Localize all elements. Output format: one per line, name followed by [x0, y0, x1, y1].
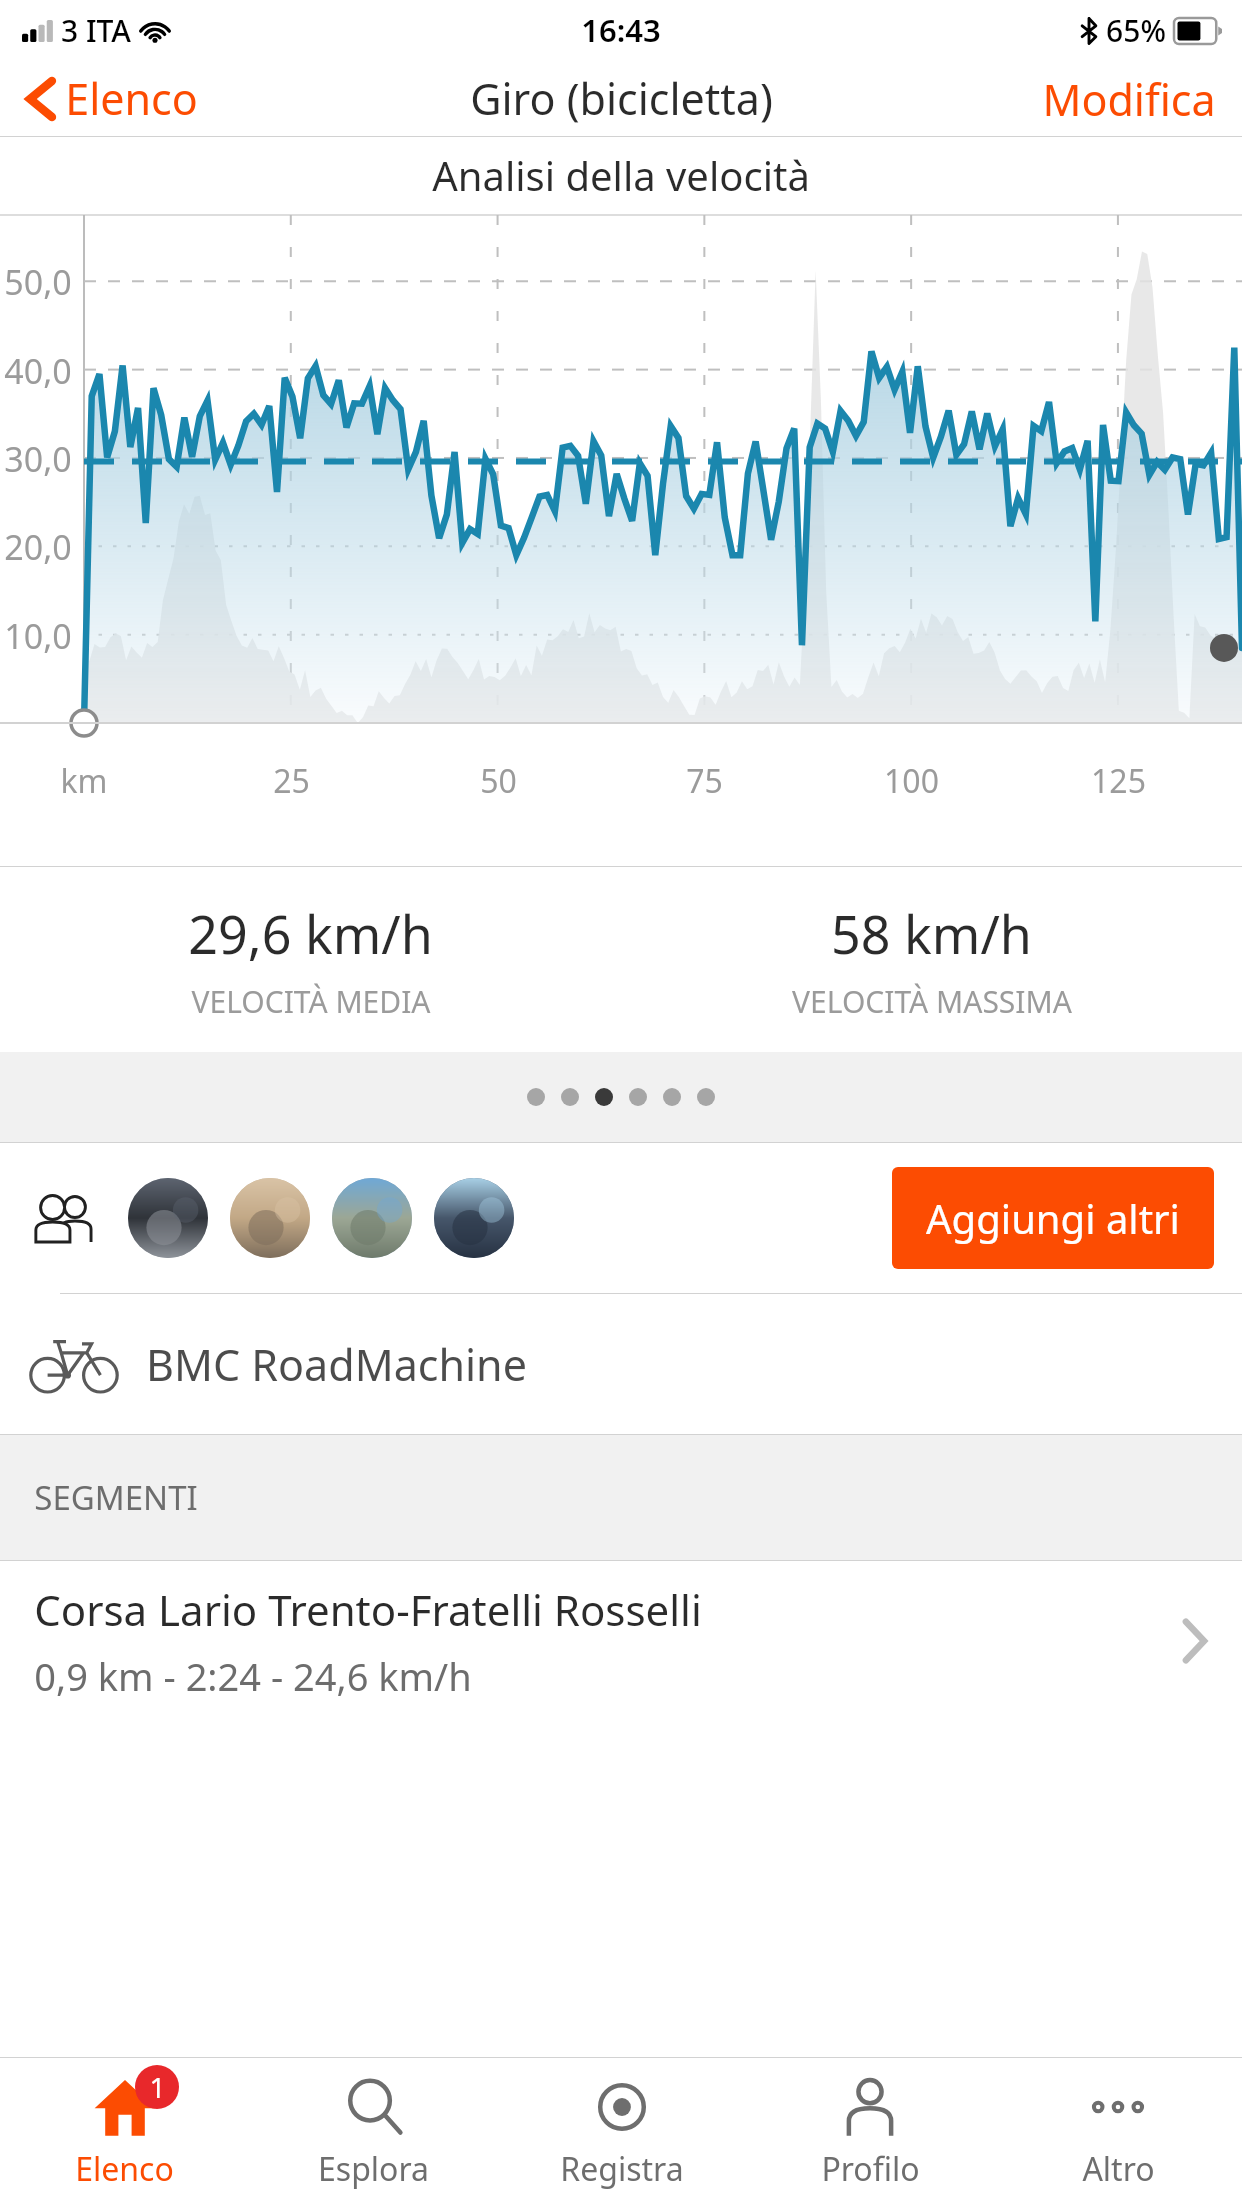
staticText: 58 km/h: [831, 898, 1032, 969]
button[interactable]: Atleta: [332, 1178, 412, 1258]
staticText: Aggiungi altri: [926, 1191, 1180, 1245]
staticText: Elenco: [65, 69, 198, 128]
staticText: Altro: [1082, 2147, 1155, 2191]
staticText: 0,9 km - 2:24 - 24,6 km/h: [34, 1650, 472, 1702]
staticText: VELOCITÀ MASSIMA: [792, 981, 1072, 1022]
staticText: Registra: [560, 2147, 684, 2191]
staticText: Analisi della velocità: [432, 148, 810, 202]
staticText: 1: [149, 2068, 166, 2106]
button[interactable]: 58 km/h: [621, 867, 1242, 1052]
button[interactable]: Esplora: [249, 2058, 498, 2208]
staticText: Modifica: [1042, 70, 1216, 126]
staticText: Esplora: [318, 2147, 429, 2191]
button[interactable]: Corsa Lario Trento-Fratelli Rosselli: [0, 1561, 1242, 1721]
staticText: 65%: [1106, 10, 1166, 51]
staticText: 50: [480, 759, 517, 803]
staticText: BMC RoadMachine: [146, 1335, 527, 1394]
staticText: VELOCITÀ MEDIA: [191, 981, 431, 1022]
button[interactable]: 29,6 km/h: [0, 867, 621, 1052]
staticText: Corsa Lario Trento-Fratelli Rosselli: [34, 1581, 702, 1638]
staticText: 25: [273, 759, 310, 803]
staticText: 29,6 km/h: [188, 898, 433, 969]
button[interactable]: BMC RoadMachine: [0, 1294, 1242, 1434]
button[interactable]: Altro: [994, 2058, 1242, 2208]
button[interactable]: Atleta: [434, 1178, 514, 1258]
staticText: Profilo: [821, 2147, 920, 2191]
staticText: 50,0: [0, 259, 76, 305]
button[interactable]: Modifica: [1016, 60, 1242, 136]
button[interactable]: Aggiungi altri: [892, 1167, 1214, 1269]
staticText: 30,0: [0, 436, 76, 482]
staticText: SEGMENTI: [34, 1475, 198, 1520]
staticText: 125: [1091, 759, 1146, 803]
button[interactable]: Atleti: [28, 1181, 102, 1255]
staticText: 100: [884, 759, 939, 803]
staticText: 16:43: [581, 9, 661, 51]
staticText: Elenco: [75, 2147, 174, 2191]
staticText: km: [60, 759, 108, 803]
button[interactable]: Profilo: [746, 2058, 994, 2208]
staticText: 20,0: [0, 524, 76, 570]
staticText: 10,0: [0, 613, 76, 659]
staticText: 40,0: [0, 348, 76, 394]
button[interactable]: 1: [0, 2058, 249, 2208]
staticText: Giro (bicicletta): [470, 69, 773, 128]
button[interactable]: Registra: [498, 2058, 746, 2208]
button[interactable]: Atleta: [128, 1178, 208, 1258]
staticText: 3 ITA: [61, 10, 131, 51]
staticText: 75: [686, 759, 723, 803]
button[interactable]: Elenco: [0, 61, 216, 136]
button[interactable]: Atleta: [230, 1178, 310, 1258]
